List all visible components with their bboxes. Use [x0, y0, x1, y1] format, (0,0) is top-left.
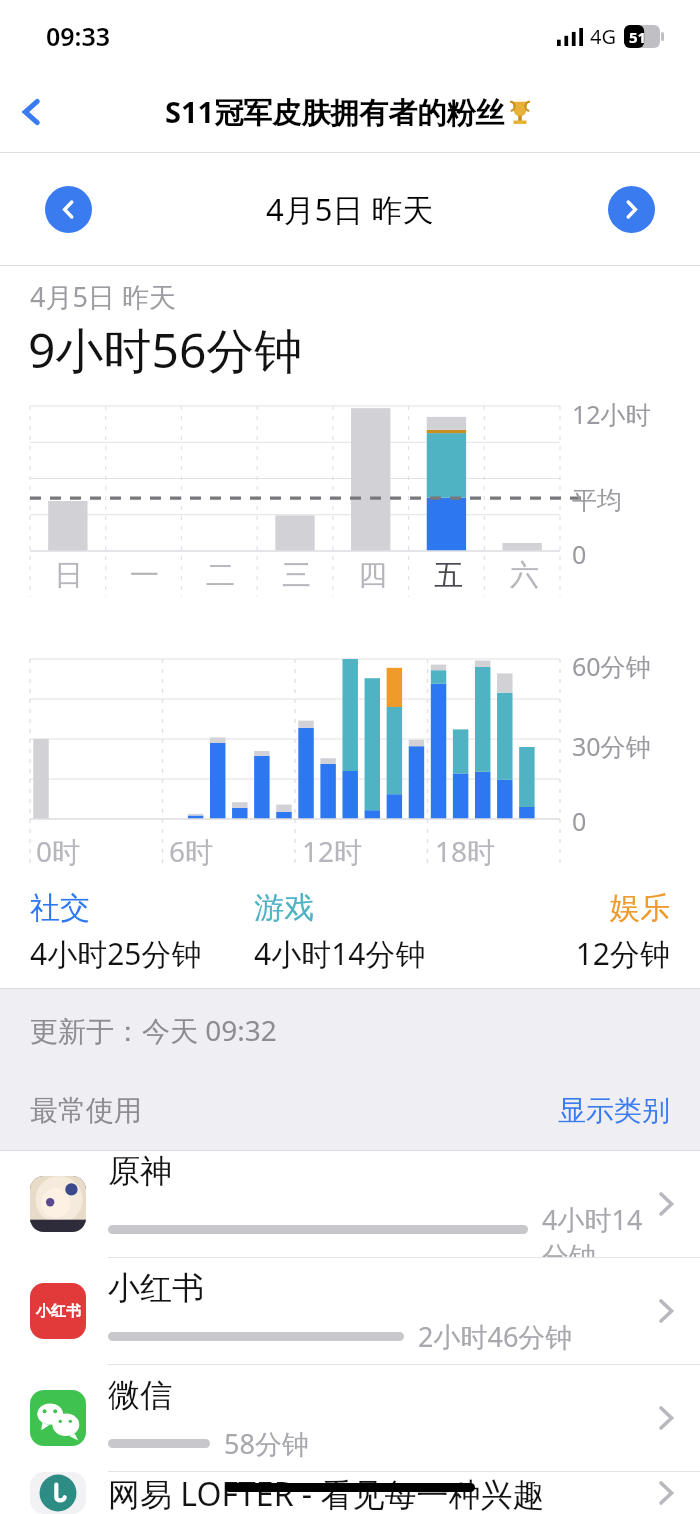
staticText: 18时 — [435, 832, 496, 870]
staticText: 30分钟 — [572, 729, 651, 763]
button[interactable]: 小红书 — [0, 1258, 700, 1365]
staticText: 原神 — [108, 1151, 172, 1191]
staticText: 三 — [282, 557, 311, 594]
staticText: 网易 LOFTER - 看见每一种兴趣 — [108, 1472, 545, 1514]
staticText: 4小时14分钟 — [254, 933, 479, 974]
staticText: 五 — [434, 557, 463, 594]
staticText: 0 — [572, 804, 587, 838]
staticText: 四 — [358, 557, 387, 594]
staticText: 更新于：今天 09:32 — [30, 1011, 277, 1049]
staticText: 娱乐 — [479, 889, 670, 927]
staticText: 58分钟 — [224, 1425, 309, 1462]
staticText: 微信 — [108, 1375, 172, 1415]
staticText: 0 — [572, 537, 587, 571]
staticText: 12分钟 — [479, 933, 670, 974]
staticText: 51 — [629, 27, 647, 47]
staticText: 最常使用 — [30, 1093, 142, 1128]
staticText: 六 — [510, 557, 539, 594]
staticText: 平均 — [572, 485, 622, 516]
staticText: 6时 — [169, 832, 214, 870]
button[interactable]: Previous day — [45, 186, 92, 233]
staticText: 二 — [206, 557, 235, 594]
button[interactable]: Back — [0, 80, 64, 144]
staticText: 60分钟 — [572, 649, 651, 683]
staticText: 4G — [590, 23, 616, 50]
staticText: 12时 — [302, 832, 363, 870]
staticText: 2小时46分钟 — [418, 1318, 573, 1355]
staticText: 显示类别 — [558, 1093, 670, 1128]
staticText: 游戏 — [254, 889, 479, 927]
staticText: 09:33 — [46, 19, 111, 53]
staticText: 小红书 — [36, 1302, 81, 1321]
staticText: 0时 — [36, 832, 81, 870]
staticText: 12小时 — [572, 397, 651, 431]
staticText: 9小时56分钟 — [28, 317, 303, 383]
staticText: 4小时14分钟 — [542, 1201, 646, 1257]
staticText: 4小时25分钟 — [30, 933, 254, 974]
button[interactable]: 显示类别 — [558, 1093, 670, 1128]
button[interactable]: 网易 LOFTER - 看见每一种兴趣 — [0, 1472, 700, 1514]
staticText: 一 — [130, 557, 159, 594]
button[interactable]: 原神 — [0, 1151, 700, 1258]
button[interactable]: 微信 — [0, 1365, 700, 1472]
staticText: 社交 — [30, 889, 254, 927]
staticText: 4月5日 昨天 — [30, 278, 176, 315]
staticText: 小红书 — [108, 1268, 204, 1308]
staticText: 4月5日 昨天 — [266, 188, 434, 230]
staticText: S11冠军皮肤拥有者的粉丝 — [165, 92, 505, 132]
staticText: 日 — [54, 557, 83, 594]
button[interactable]: Next day — [608, 186, 655, 233]
